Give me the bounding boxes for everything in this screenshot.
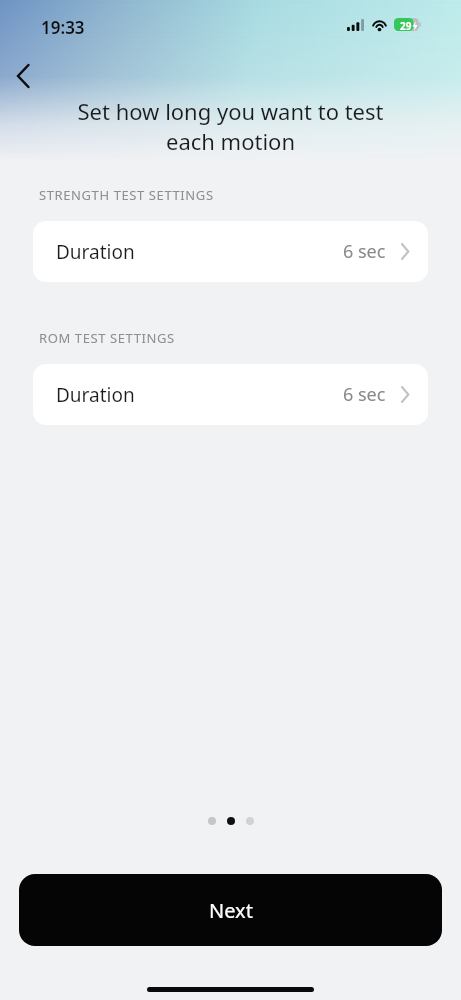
button[interactable]: Duration [33,364,428,425]
button[interactable]: Back [4,57,42,95]
staticText: STRENGTH TEST SETTINGS [39,186,214,204]
staticText: Duration [56,382,135,408]
staticText: Set how long you want to test each motio… [30,96,431,157]
staticText: 6 sec [343,239,386,264]
staticText: 19:33 [41,16,85,39]
staticText: 6 sec [343,382,386,407]
staticText: Next [209,897,253,924]
button[interactable]: Duration [33,221,428,282]
staticText: ROM TEST SETTINGS [39,329,175,347]
button[interactable]: Next [19,874,442,946]
staticText: Duration [56,239,135,265]
staticText: 29 [400,19,412,33]
